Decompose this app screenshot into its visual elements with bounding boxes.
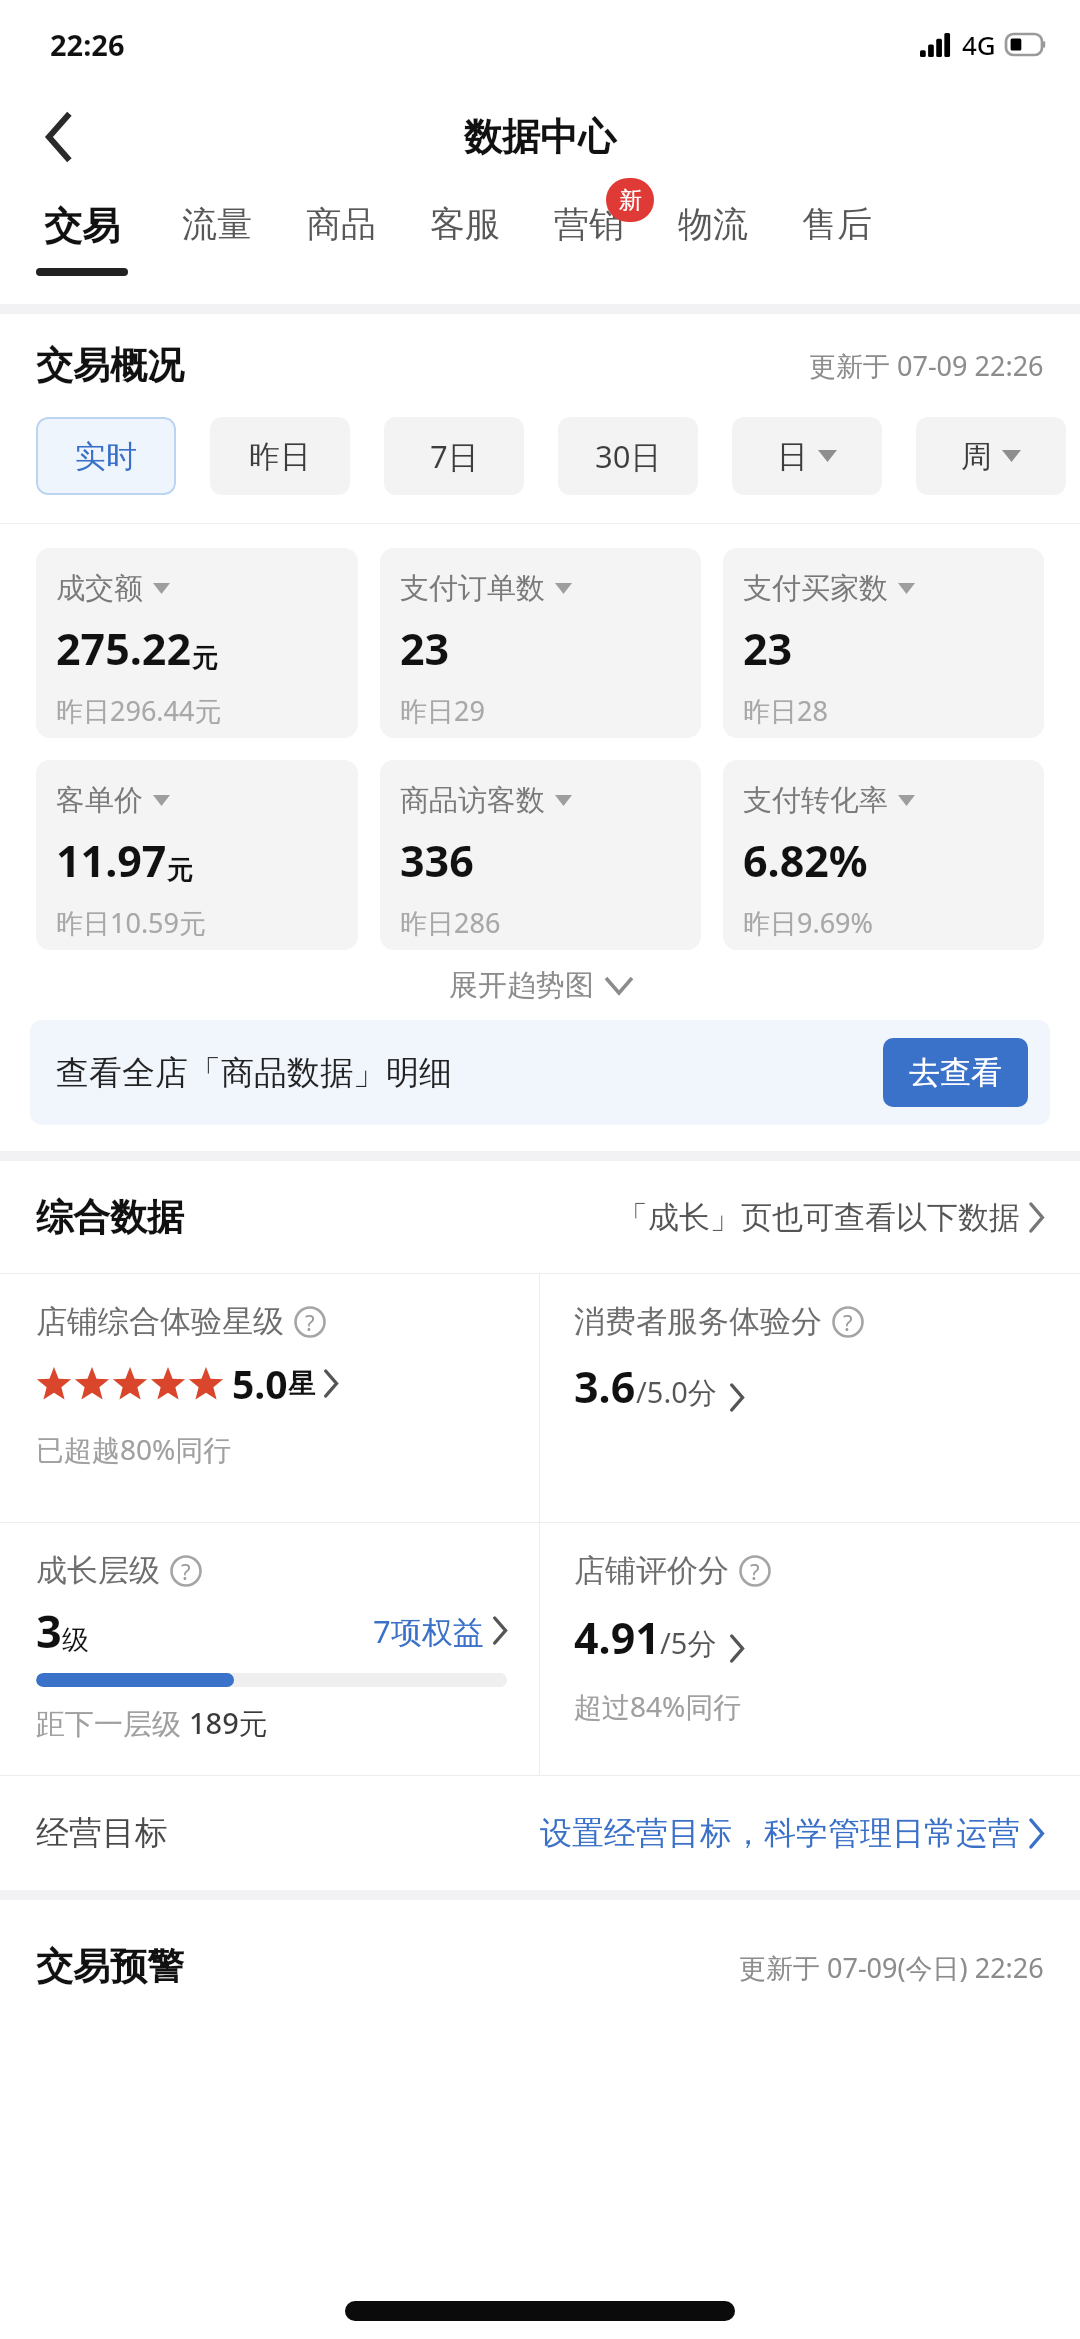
staticText: /5分 <box>660 1623 717 1663</box>
staticText: 流量 <box>182 202 252 246</box>
staticText: 设置经营目标，科学管理日常运营 <box>540 1813 1020 1853</box>
staticText: 综合数据 <box>36 1194 184 1241</box>
staticText: 支付订单数 <box>400 570 545 607</box>
staticText: 成交额 <box>56 570 143 607</box>
button[interactable]: 实时 <box>36 417 176 495</box>
staticText: 元 <box>167 854 193 887</box>
button[interactable]: 日 <box>732 417 882 495</box>
staticText: /5.0分 <box>636 1372 717 1412</box>
staticText: 更新于 07-09(今日) 22:26 <box>739 1949 1044 1986</box>
staticText: 336 <box>400 831 474 890</box>
button[interactable]: 交易 <box>36 186 128 304</box>
staticText: 6.82% <box>743 831 868 890</box>
button[interactable]: 30日 <box>558 417 698 495</box>
staticText: 客服 <box>430 202 500 246</box>
staticText: 新 <box>619 186 642 215</box>
staticText: 昨日29 <box>400 692 485 729</box>
button[interactable]: 客单价 <box>36 760 358 950</box>
staticText: 22:26 <box>50 25 125 64</box>
staticText: 商品访客数 <box>400 782 545 819</box>
staticText: 店铺评价分 <box>574 1551 729 1590</box>
staticText: 客单价 <box>56 782 143 819</box>
button[interactable]: 查看全店「商品数据」明细 <box>30 1020 1050 1125</box>
staticText: ? <box>750 1556 760 1586</box>
staticText: 店铺综合体验星级 <box>36 1302 284 1341</box>
staticText: 日 <box>777 437 808 476</box>
button[interactable]: 支付转化率 <box>723 760 1044 950</box>
button[interactable]: 综合数据 <box>36 1161 1044 1273</box>
staticText: 更新于 07-09 22:26 <box>809 347 1044 384</box>
staticText: 23 <box>400 619 450 678</box>
staticText: 275.22 <box>56 619 192 678</box>
button[interactable]: 周 <box>916 417 1066 495</box>
staticText: 级 <box>62 1623 89 1657</box>
staticText: 5.0 <box>232 1357 288 1410</box>
staticText: ? <box>843 1307 853 1337</box>
staticText: 昨日9.69% <box>743 904 874 941</box>
staticText: 成长层级 <box>36 1551 160 1590</box>
button[interactable]: 成交额 <box>36 548 358 738</box>
staticText: 昨日296.44元 <box>56 692 222 729</box>
button[interactable]: 去查看 <box>883 1038 1028 1107</box>
staticText: ? <box>305 1307 315 1337</box>
button[interactable]: 昨日 <box>210 417 350 495</box>
button[interactable]: Back <box>26 104 92 170</box>
button[interactable]: 店铺综合体验星级 <box>0 1274 539 1522</box>
staticText: 7日 <box>430 435 479 477</box>
staticText: 3 <box>36 1600 62 1661</box>
staticText: 星 <box>288 1367 315 1401</box>
staticText: 昨日 <box>249 437 311 476</box>
staticText: 经营目标 <box>36 1812 168 1854</box>
staticText: 周 <box>961 437 992 476</box>
staticText: 11.97 <box>56 831 167 890</box>
staticText: 昨日286 <box>400 904 501 941</box>
staticText: 查看全店「商品数据」明细 <box>56 1052 452 1094</box>
staticText: 4G <box>962 27 996 62</box>
staticText: 「成长」页也可查看以下数据 <box>617 1198 1020 1237</box>
button[interactable]: 消费者服务体验分 <box>540 1274 1080 1522</box>
staticText: 售后 <box>802 202 872 246</box>
staticText: 交易预警 <box>36 1943 184 1990</box>
staticText: 距下一层级 <box>36 1703 189 1743</box>
staticText: 23 <box>743 619 793 678</box>
button[interactable]: 物流 <box>678 186 748 304</box>
staticText: 数据中心 <box>464 113 616 161</box>
staticText: 昨日10.59元 <box>56 904 207 941</box>
staticText: 189元 <box>189 1703 268 1743</box>
staticText: 7项权益 <box>373 1610 484 1652</box>
button[interactable]: 经营目标 <box>36 1776 1044 1890</box>
staticText: 商品 <box>306 202 376 246</box>
button[interactable]: 支付买家数 <box>723 548 1044 738</box>
staticText: 支付买家数 <box>743 570 888 607</box>
staticText: 去查看 <box>909 1053 1002 1092</box>
staticText: 昨日28 <box>743 692 828 729</box>
staticText: 营销 <box>554 202 624 246</box>
staticText: 交易 <box>44 202 120 250</box>
button[interactable]: 7日 <box>384 417 524 495</box>
staticText: ? <box>181 1556 191 1586</box>
button[interactable]: 商品 <box>306 186 376 304</box>
staticText: 展开趋势图 <box>449 967 594 1004</box>
staticText: 30日 <box>595 435 662 477</box>
button[interactable]: 营销 <box>554 186 624 304</box>
staticText: 4.91 <box>574 1608 660 1667</box>
staticText: 交易概况 <box>36 342 184 389</box>
button[interactable]: 店铺评价分 <box>540 1523 1080 1775</box>
button[interactable]: 客服 <box>430 186 500 304</box>
staticText: 物流 <box>678 202 748 246</box>
staticText: 3.6 <box>574 1357 636 1416</box>
button[interactable]: 成长层级 <box>0 1523 539 1775</box>
button[interactable]: 流量 <box>182 186 252 304</box>
staticText: 支付转化率 <box>743 782 888 819</box>
staticText: 消费者服务体验分 <box>574 1302 822 1341</box>
button[interactable]: 商品访客数 <box>380 760 701 950</box>
staticText: 已超越80%同行 <box>36 1430 232 1468</box>
button[interactable]: 支付订单数 <box>380 548 701 738</box>
button[interactable]: 售后 <box>802 186 872 304</box>
staticText: 实时 <box>75 437 137 476</box>
staticText: 超过84%同行 <box>574 1687 742 1725</box>
staticText: 元 <box>192 642 218 675</box>
button[interactable]: 展开趋势图 <box>0 950 1080 1020</box>
